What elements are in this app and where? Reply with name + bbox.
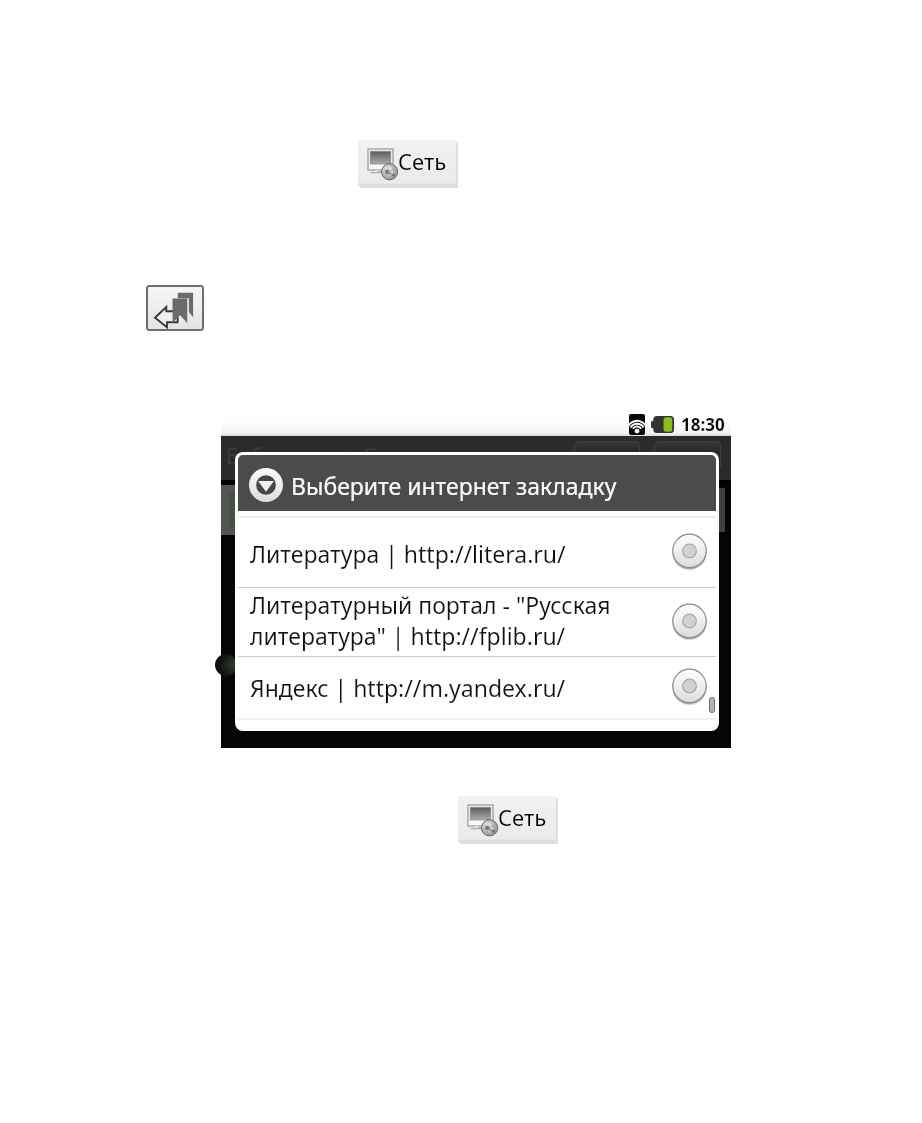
staticText: Библиотека> Создать новую гипер	[226, 442, 580, 471]
staticText: Сеть	[398, 146, 447, 176]
button[interactable]: Сохранить	[654, 441, 721, 471]
staticText: Отменить	[574, 449, 640, 471]
button[interactable]: Литературный портал - "Русская	[238, 588, 716, 656]
button[interactable]: Литература | http://litera.ru/	[238, 518, 716, 587]
staticText: литература" | http://fplib.ru/	[250, 620, 566, 651]
button[interactable]: Сеть	[458, 796, 556, 842]
staticText: Сеть	[498, 802, 547, 832]
staticText: 18:30	[681, 413, 725, 436]
staticText: Выберите интернет закладку	[291, 470, 617, 501]
button[interactable]: Яндекс | http://m.yandex.ru/	[238, 657, 716, 718]
button[interactable]: Сеть	[229, 492, 309, 528]
button[interactable]: Сеть	[358, 140, 456, 186]
staticText: Литература | http://litera.ru/	[250, 538, 566, 569]
staticText: Яндекс | http://m.yandex.ru/	[250, 672, 566, 703]
staticText: Литературный портал - "Русская	[250, 589, 611, 620]
staticText: Сохранить	[654, 449, 721, 471]
button[interactable]: Импорт закладки	[146, 285, 204, 331]
button[interactable]: Отменить	[574, 441, 640, 471]
